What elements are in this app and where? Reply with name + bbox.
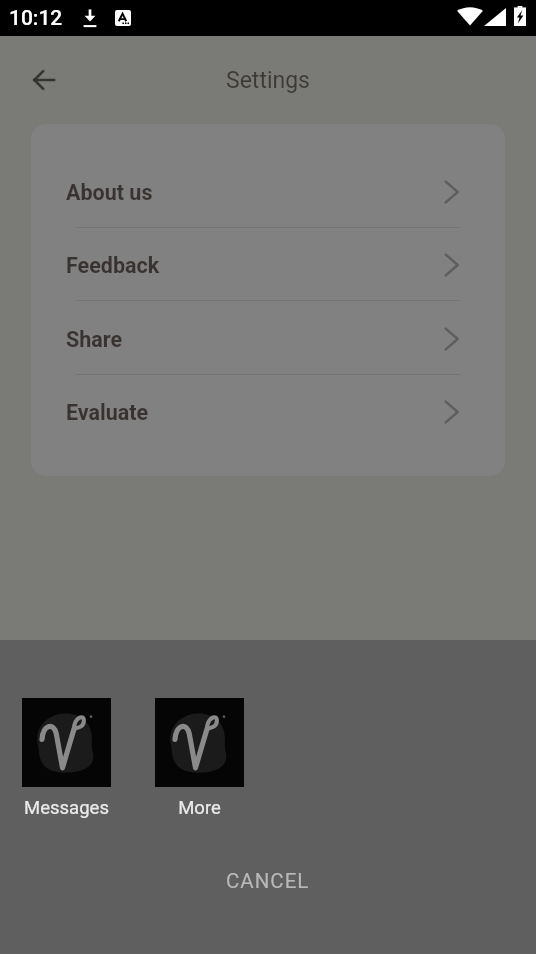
staticText: Evaluate (66, 400, 149, 425)
staticText: CANCEL (226, 869, 310, 893)
button[interactable]: Feedback (31, 229, 505, 302)
button[interactable]: Evaluate (31, 376, 505, 449)
staticText: Feedback (66, 253, 160, 278)
button[interactable]: About us (31, 156, 505, 229)
button[interactable]: Messages (22, 698, 111, 819)
staticText: Share (66, 327, 123, 352)
staticText: 10:12 (9, 6, 63, 31)
staticText: About us (66, 180, 153, 205)
staticText: Messages (24, 797, 109, 819)
staticText: Settings (226, 67, 310, 94)
button[interactable]: Back (20, 56, 68, 104)
button[interactable]: More (155, 698, 244, 819)
button[interactable]: CANCEL (183, 857, 353, 905)
staticText: More (178, 797, 221, 819)
button[interactable]: Share (31, 303, 505, 376)
